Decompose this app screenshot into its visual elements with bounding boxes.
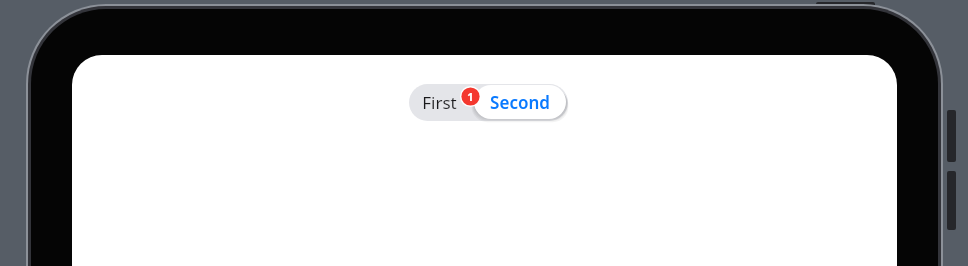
button[interactable]: Volume down <box>947 171 956 230</box>
staticText: Second <box>490 91 550 114</box>
button[interactable]: Volume up <box>947 110 956 162</box>
staticText: First <box>422 91 457 114</box>
button[interactable]: First <box>410 85 474 119</box>
button[interactable]: Second <box>474 85 566 119</box>
button[interactable]: Mute switch <box>816 2 875 10</box>
staticText: 1 <box>467 89 474 104</box>
